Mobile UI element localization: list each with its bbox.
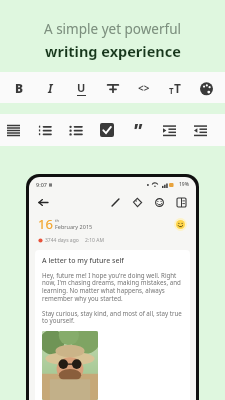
staticText: Hey, future me! I hope you're doing well… xyxy=(42,271,183,303)
staticText: I xyxy=(48,80,53,96)
button[interactable]: Strikethrough xyxy=(101,76,125,100)
staticText: Stay curious, stay kind, and most of all… xyxy=(42,309,183,325)
button[interactable]: Align xyxy=(1,118,25,142)
staticText: T xyxy=(174,80,181,96)
staticText: 9:07 xyxy=(36,181,47,188)
button[interactable]: Edit xyxy=(109,196,122,209)
staticText: writing experience xyxy=(45,41,181,61)
button[interactable]: Layout xyxy=(175,196,188,209)
button[interactable]: A letter to my future self xyxy=(35,250,190,400)
button[interactable]: Code block xyxy=(132,76,156,100)
button[interactable]: Numbered list xyxy=(32,118,56,142)
button[interactable]: Text colour xyxy=(194,76,218,100)
staticText: th xyxy=(55,218,59,223)
staticText: U xyxy=(77,80,86,95)
staticText: <> xyxy=(138,81,150,95)
staticText: 2:10 AM xyxy=(85,237,104,244)
button[interactable]: Mood xyxy=(153,196,166,209)
staticText: 19% xyxy=(179,181,189,188)
staticText: ” xyxy=(134,119,143,142)
staticText: B xyxy=(15,80,24,96)
button[interactable]: Outdent xyxy=(188,118,212,142)
button[interactable]: Checklist xyxy=(95,118,119,142)
button[interactable]: Mood happy xyxy=(174,218,187,231)
button[interactable]: Underline xyxy=(69,76,93,100)
staticText: February 2015 xyxy=(55,223,93,230)
staticText: A simple yet powerful xyxy=(44,20,181,38)
button[interactable]: Indent xyxy=(157,118,181,142)
staticText: 16 xyxy=(38,215,53,233)
button[interactable]: Bulleted list xyxy=(63,118,87,142)
button[interactable]: Tags xyxy=(131,196,144,209)
button[interactable]: Italic xyxy=(38,76,62,100)
staticText: T xyxy=(169,85,174,96)
button[interactable]: Back xyxy=(37,196,50,209)
staticText: A letter to my future self xyxy=(42,256,124,266)
button[interactable]: Photo attachment xyxy=(42,331,98,400)
button[interactable]: Quote xyxy=(126,118,150,142)
staticText: 3744 days ago xyxy=(45,237,79,244)
button[interactable]: Text size xyxy=(163,76,187,100)
button[interactable]: Bold xyxy=(7,76,31,100)
